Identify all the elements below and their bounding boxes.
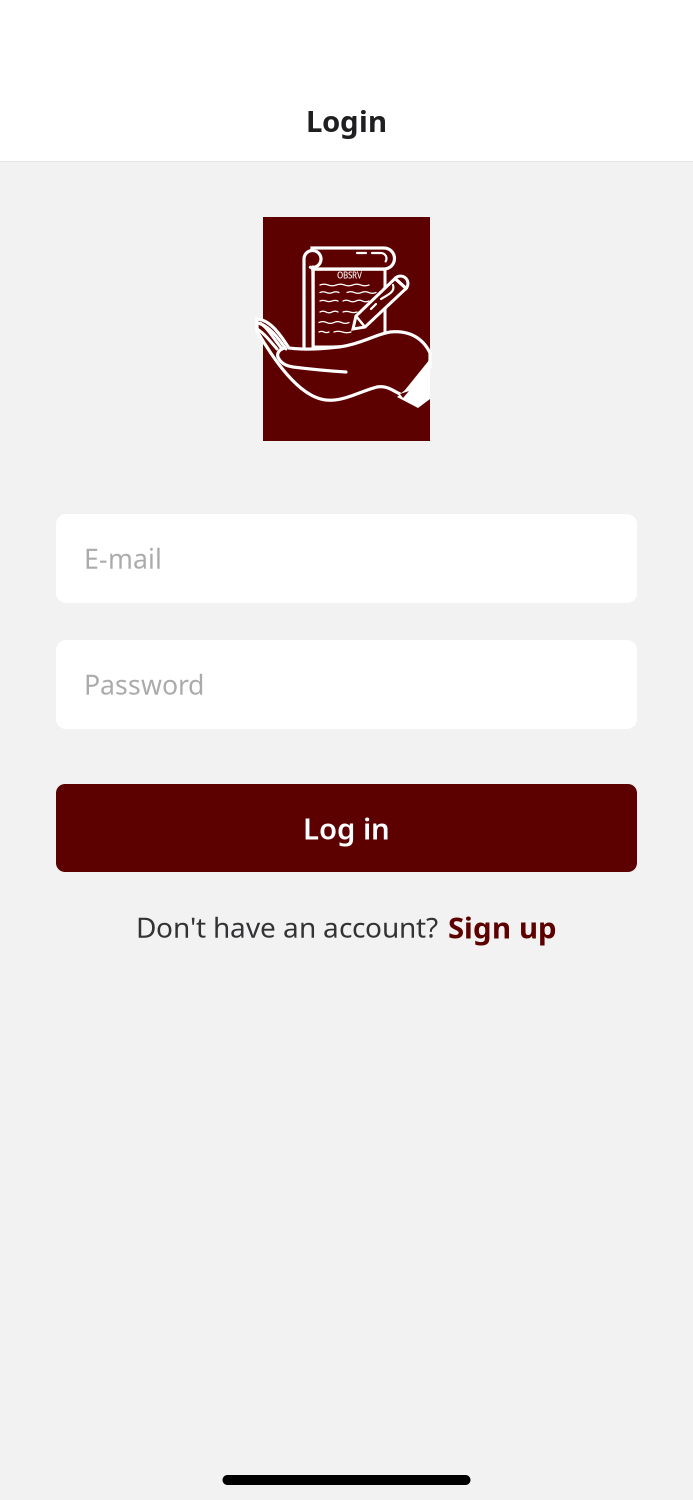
staticText: OBSRV xyxy=(337,270,362,281)
button[interactable]: Log in xyxy=(56,784,637,872)
staticText: Password xyxy=(84,667,204,702)
staticText: E-mail xyxy=(84,541,162,576)
staticText: Log in xyxy=(303,808,390,847)
button[interactable]: Sign up xyxy=(448,907,557,946)
staticText: Sign up xyxy=(448,907,557,946)
staticText: Don't have an account? xyxy=(136,908,438,946)
staticText: Login xyxy=(306,101,387,140)
